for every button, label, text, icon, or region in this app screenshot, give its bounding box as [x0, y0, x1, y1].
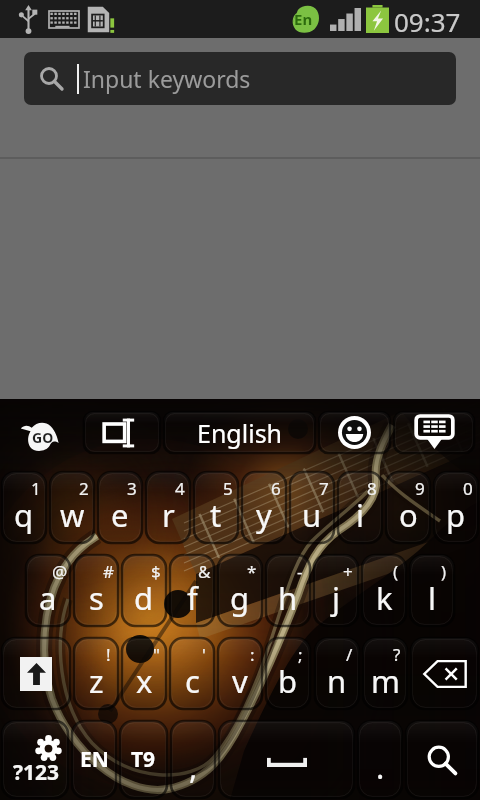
staticText: g	[230, 577, 250, 619]
staticText: a	[39, 577, 57, 619]
staticText: *	[247, 560, 257, 583]
button[interactable]: Input method	[84, 412, 160, 453]
button[interactable]: s	[74, 555, 118, 626]
button[interactable]: m	[363, 638, 407, 709]
staticText: 09:37	[394, 4, 461, 39]
staticText: w	[60, 494, 85, 536]
staticText: T9	[131, 745, 156, 774]
staticText: #	[103, 560, 114, 583]
staticText: ?123	[13, 758, 60, 787]
button[interactable]: i	[338, 472, 382, 543]
button[interactable]: b	[266, 638, 310, 709]
staticText: English	[197, 416, 283, 450]
button[interactable]: p	[434, 472, 478, 543]
staticText: i	[356, 494, 364, 536]
staticText: .	[376, 746, 385, 788]
staticText: s	[89, 577, 104, 619]
staticText: +	[343, 560, 353, 583]
button[interactable]: English	[164, 412, 315, 453]
button[interactable]: c	[170, 638, 214, 709]
button[interactable]: Space	[219, 721, 354, 798]
staticText: )	[441, 560, 447, 583]
staticText: Input keywords	[83, 63, 251, 94]
staticText: @	[52, 560, 68, 583]
staticText: "	[153, 643, 160, 666]
button[interactable]: Input keywords	[24, 52, 456, 105]
button[interactable]: EN	[72, 721, 116, 798]
staticText: x	[136, 660, 153, 702]
button[interactable]: k	[362, 555, 406, 626]
button[interactable]: q	[2, 472, 46, 543]
staticText: !	[106, 643, 111, 666]
staticText: d	[134, 577, 154, 619]
staticText: EN	[80, 745, 109, 774]
staticText: l	[428, 577, 436, 619]
staticText: 8	[367, 477, 377, 500]
staticText: $	[151, 560, 161, 583]
staticText: e	[111, 494, 129, 536]
staticText: 2	[79, 477, 89, 500]
staticText: h	[278, 577, 298, 619]
button[interactable]: Shift	[2, 638, 70, 709]
button[interactable]: e	[98, 472, 142, 543]
button[interactable]: f	[170, 555, 214, 626]
staticText: n	[327, 660, 347, 702]
staticText: o	[399, 494, 418, 536]
button[interactable]: GO Keyboard menu	[0, 405, 84, 459]
staticText: 1	[31, 477, 41, 500]
staticText: m	[371, 660, 400, 702]
button[interactable]: .	[358, 721, 402, 798]
button[interactable]: w	[50, 472, 94, 543]
staticText: f	[187, 577, 198, 619]
button[interactable]: T9	[120, 721, 167, 798]
button[interactable]: j	[314, 555, 358, 626]
button[interactable]: u	[290, 472, 334, 543]
button[interactable]: Settings and symbols	[2, 721, 68, 798]
staticText: :	[250, 643, 255, 666]
staticText: q	[14, 494, 34, 536]
button[interactable]: l	[410, 555, 454, 626]
staticText: u	[302, 494, 322, 536]
button[interactable]: h	[266, 555, 310, 626]
button[interactable]: o	[386, 472, 430, 543]
staticText: 5	[223, 477, 233, 500]
staticText: r	[162, 494, 175, 536]
staticText: j	[332, 577, 340, 619]
button[interactable]: Hide keyboard	[394, 412, 474, 453]
staticText: t	[210, 494, 222, 536]
button[interactable]: ,	[171, 721, 215, 798]
button[interactable]: Delete	[411, 638, 478, 709]
staticText: 9	[415, 477, 425, 500]
staticText: z	[89, 660, 104, 702]
button[interactable]: t	[194, 472, 238, 543]
staticText: p	[446, 494, 466, 536]
button[interactable]: x	[122, 638, 166, 709]
staticText: y	[256, 494, 272, 536]
button[interactable]: y	[242, 472, 286, 543]
staticText: b	[278, 660, 298, 702]
staticText: 0	[463, 477, 473, 500]
staticText: v	[232, 660, 248, 702]
staticText: ;	[298, 643, 303, 666]
button[interactable]: a	[26, 555, 70, 626]
button[interactable]: z	[74, 638, 118, 709]
staticText: -	[297, 560, 303, 583]
button[interactable]: n	[315, 638, 359, 709]
staticText: c	[185, 660, 200, 702]
staticText: 7	[319, 477, 329, 500]
staticText: 3	[127, 477, 137, 500]
button[interactable]: r	[146, 472, 190, 543]
staticText: GO	[32, 428, 54, 447]
button[interactable]: d	[122, 555, 166, 626]
button[interactable]: v	[218, 638, 262, 709]
button[interactable]: Search	[406, 721, 478, 798]
staticText: &	[198, 560, 211, 583]
button[interactable]: g	[218, 555, 262, 626]
staticText: '	[202, 643, 206, 666]
staticText: k	[376, 577, 393, 619]
staticText: 4	[175, 477, 185, 500]
staticText: ,	[189, 746, 198, 788]
staticText: 6	[271, 477, 281, 500]
button[interactable]: Emoji	[319, 412, 390, 453]
staticText: /	[346, 643, 353, 666]
